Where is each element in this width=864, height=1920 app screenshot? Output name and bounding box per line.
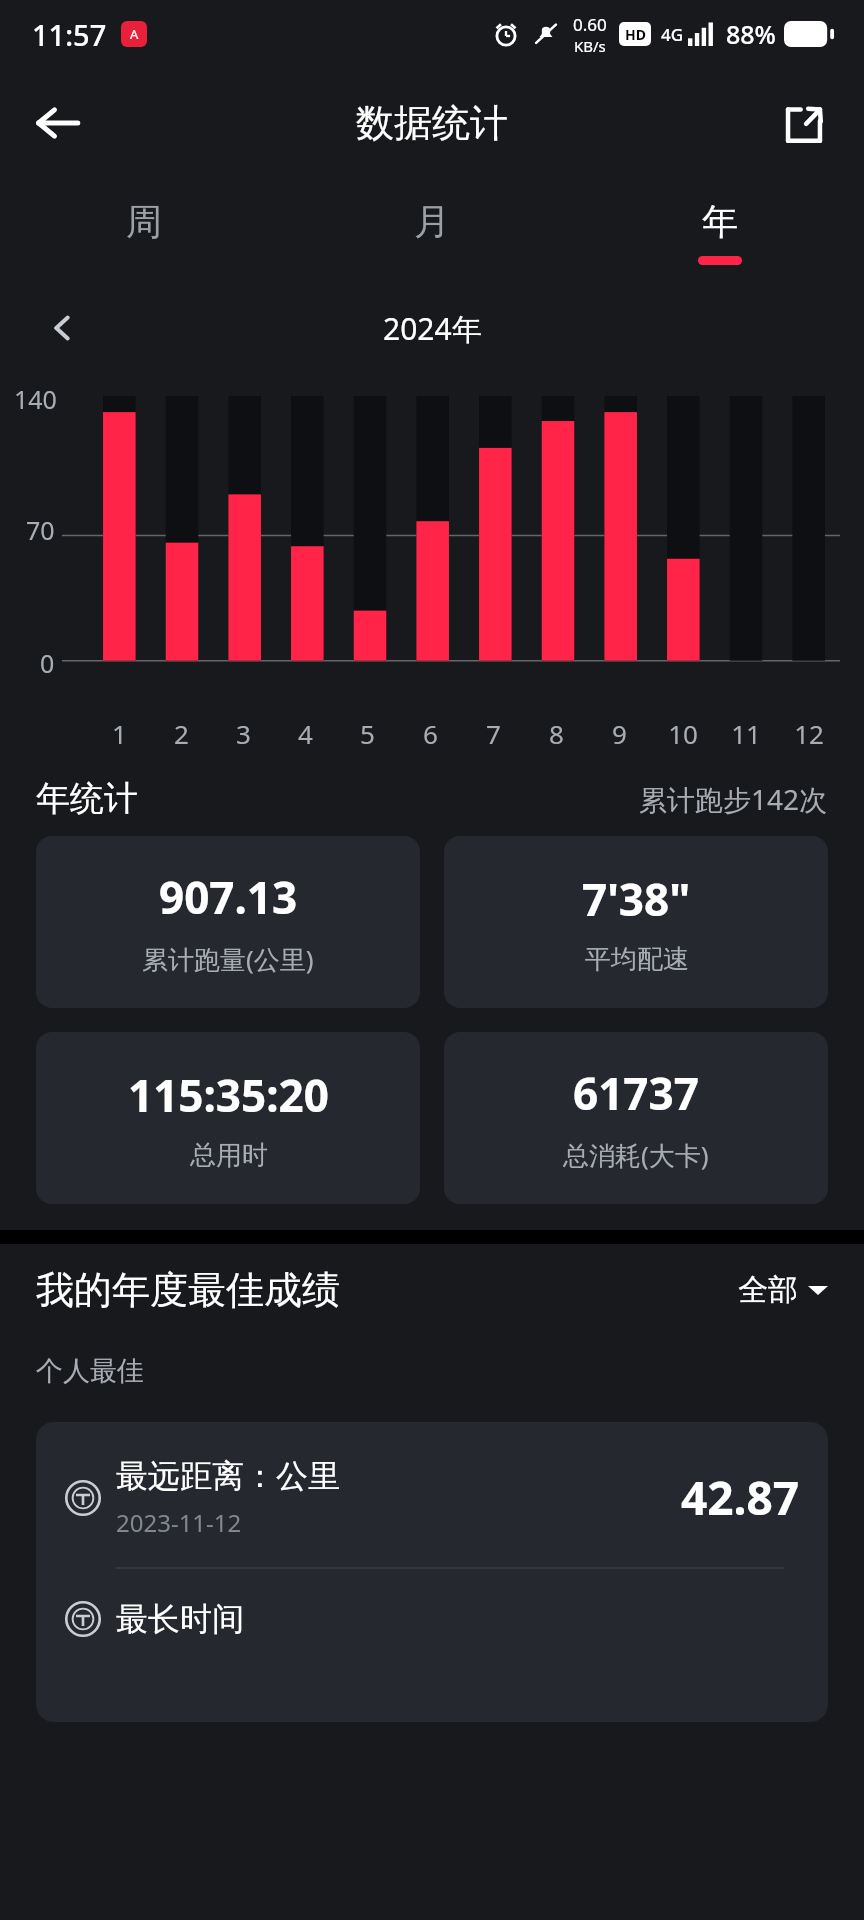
staticText: 2 xyxy=(174,716,189,751)
button[interactable]: 周 xyxy=(0,178,288,286)
staticText: 907.13 xyxy=(159,867,298,927)
staticText: 最长时间 xyxy=(116,1599,244,1639)
staticText: 累计跑量(公里) xyxy=(142,941,314,977)
staticText: 11:57 xyxy=(32,15,107,54)
button[interactable]: 最远距离：公里 xyxy=(64,1456,800,1539)
staticText: 7 xyxy=(486,716,501,751)
staticText: 11 xyxy=(731,716,761,751)
staticText: 年统计 xyxy=(36,777,138,820)
staticText: 4 xyxy=(298,716,313,751)
staticText: 3 xyxy=(236,716,251,751)
button[interactable]: 全部 xyxy=(738,1271,828,1309)
staticText: 7'38" xyxy=(582,869,691,929)
staticText: 70 xyxy=(26,513,55,547)
staticText: 累计跑步142次 xyxy=(639,780,828,818)
button[interactable]: 月 xyxy=(288,178,576,286)
button[interactable]: 年 xyxy=(576,178,864,286)
staticText: 总用时 xyxy=(190,1139,268,1172)
staticText: 全部 xyxy=(738,1271,798,1309)
staticText: 0 xyxy=(40,646,55,680)
staticText: 总消耗(大卡) xyxy=(563,1137,709,1173)
button[interactable]: Share xyxy=(768,87,840,159)
button[interactable]: 7'38" xyxy=(444,836,828,1008)
staticText: 个人最佳 xyxy=(36,1354,144,1388)
staticText: A xyxy=(130,25,139,43)
staticText: 140 xyxy=(14,382,57,416)
staticText: 6 xyxy=(423,716,438,751)
staticText: 5 xyxy=(360,716,375,751)
button[interactable]: 61737 xyxy=(444,1032,828,1204)
staticText: 12 xyxy=(794,716,824,751)
staticText: 平均配速 xyxy=(585,943,689,976)
staticText: 月 xyxy=(414,199,450,244)
staticText: 61737 xyxy=(573,1063,699,1123)
button[interactable]: Back xyxy=(22,87,94,159)
staticText: 数据统计 xyxy=(356,99,508,147)
staticText: 1 xyxy=(112,716,127,751)
button[interactable]: Previous year xyxy=(34,300,90,356)
staticText: 4G xyxy=(661,23,684,46)
button[interactable]: 115:35:20 xyxy=(36,1032,420,1204)
staticText: 9 xyxy=(612,716,627,751)
staticText: 2024年 xyxy=(383,308,482,349)
staticText: HD xyxy=(625,25,646,44)
staticText: 最远距离：公里 xyxy=(116,1456,340,1496)
staticText: 周 xyxy=(126,199,162,244)
button[interactable]: 最长时间 xyxy=(64,1599,800,1639)
staticText: 10 xyxy=(668,716,698,751)
staticText: KB/s xyxy=(574,36,606,56)
staticText: 我的年度最佳成绩 xyxy=(36,1266,340,1314)
button[interactable]: 907.13 xyxy=(36,836,420,1008)
staticText: 42.87 xyxy=(681,1466,800,1529)
staticText: 年 xyxy=(702,199,738,244)
staticText: 8 xyxy=(549,716,564,751)
staticText: 2023-11-12 xyxy=(116,1506,242,1539)
staticText: 0.60 xyxy=(573,13,607,36)
staticText: 115:35:20 xyxy=(128,1065,329,1125)
staticText: 88% xyxy=(726,17,776,51)
